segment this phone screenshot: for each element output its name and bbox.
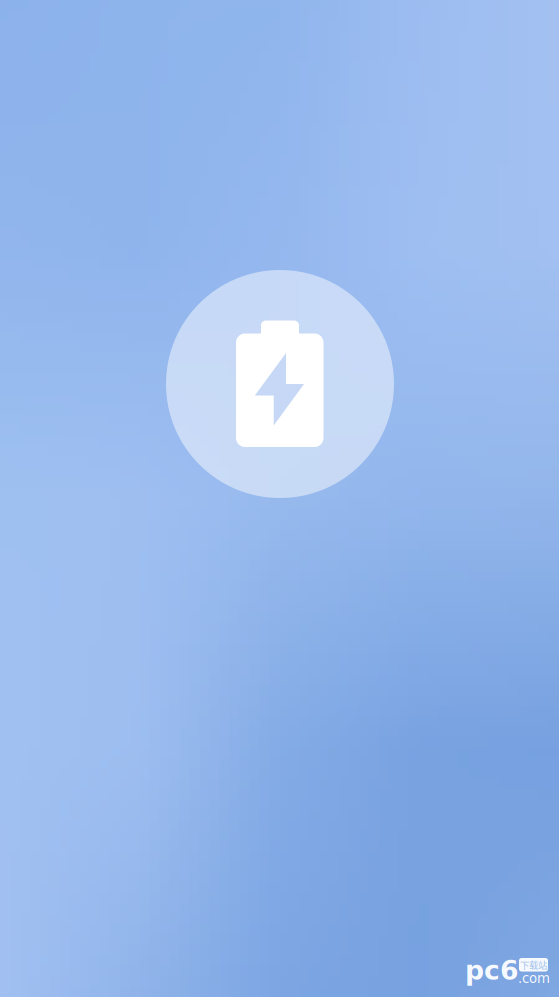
staticText: .com — [518, 970, 550, 986]
staticText: pc6 — [465, 955, 519, 986]
staticText: 下载站 — [520, 958, 547, 971]
